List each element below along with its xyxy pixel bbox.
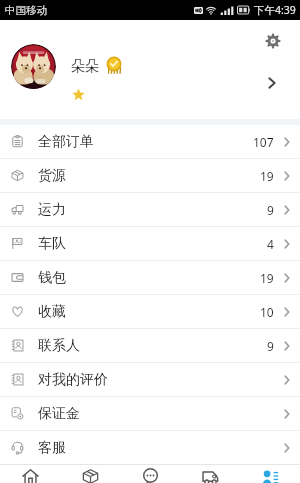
button[interactable]: 货源 bbox=[0, 159, 300, 192]
staticText: 收藏 bbox=[38, 303, 66, 321]
staticText: 107 bbox=[253, 134, 274, 150]
button[interactable]: 全部订单 bbox=[0, 125, 300, 158]
staticText: 19 bbox=[260, 270, 274, 286]
button[interactable]: Profile details bbox=[261, 72, 283, 94]
staticText: 保证金 bbox=[38, 405, 80, 423]
staticText: 下午4:39 bbox=[254, 3, 296, 17]
button[interactable]: 保证金 bbox=[0, 397, 300, 430]
button[interactable]: 联系人 bbox=[0, 329, 300, 362]
button[interactable]: Profile bbox=[240, 465, 300, 483]
staticText: 4 bbox=[267, 236, 274, 252]
staticText: 全部订单 bbox=[38, 133, 94, 151]
staticText: 9 bbox=[267, 202, 274, 218]
button[interactable]: 车队 bbox=[0, 227, 300, 260]
button[interactable]: 运力 bbox=[0, 193, 300, 226]
staticText: 运力 bbox=[38, 201, 66, 219]
button[interactable]: 客服 bbox=[0, 431, 300, 464]
button[interactable]: Avatar bbox=[11, 44, 56, 89]
staticText: 中国移动 bbox=[5, 4, 47, 17]
staticText: 对我的评价 bbox=[38, 371, 108, 389]
button[interactable]: 对我的评价 bbox=[0, 363, 300, 396]
staticText: 货源 bbox=[38, 167, 66, 185]
button[interactable]: Messages bbox=[120, 465, 180, 483]
button[interactable]: Goods bbox=[60, 465, 120, 483]
button[interactable]: Home bbox=[0, 465, 60, 483]
button[interactable]: Transport bbox=[180, 465, 240, 483]
button[interactable]: 钱包 bbox=[0, 261, 300, 294]
button[interactable]: 收藏 bbox=[0, 295, 300, 328]
staticText: 10 bbox=[260, 304, 274, 320]
button[interactable]: Settings bbox=[262, 30, 283, 51]
staticText: 朵朵 bbox=[71, 58, 99, 76]
staticText: 19 bbox=[260, 168, 274, 184]
staticText: 9 bbox=[267, 338, 274, 354]
staticText: 钱包 bbox=[38, 269, 66, 287]
staticText: 车队 bbox=[38, 235, 66, 253]
staticText: 客服 bbox=[38, 439, 66, 457]
staticText: 联系人 bbox=[38, 337, 80, 355]
